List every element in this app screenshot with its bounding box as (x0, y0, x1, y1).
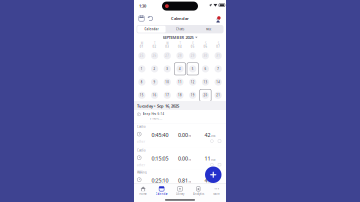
staticText: 25 (140, 54, 144, 57)
staticText: 05 (191, 45, 195, 48)
staticText: 0:45:40 (151, 131, 168, 138)
staticText: vTSS (211, 134, 215, 138)
staticText: 06 (203, 45, 207, 48)
button[interactable]: 13 (199, 75, 212, 89)
button[interactable]: Home (134, 184, 152, 197)
button[interactable]: 29 (186, 49, 199, 62)
staticText: 03 (165, 45, 169, 48)
button[interactable]: 17 (161, 89, 174, 102)
button[interactable]: 8 (135, 75, 148, 89)
button[interactable]: 27 (161, 49, 174, 62)
staticText: 16 (153, 93, 157, 97)
staticText: other (137, 140, 145, 143)
staticText: mi (188, 134, 191, 138)
staticText: S (205, 42, 206, 45)
button[interactable]: 26 (148, 49, 161, 62)
staticText: 04 (178, 45, 182, 48)
staticText: More (213, 192, 220, 196)
staticText: 11 (178, 80, 182, 84)
button[interactable]: SEPTEMBER 2025 (134, 34, 226, 41)
staticText: 4 (179, 67, 181, 71)
button[interactable]: Library (171, 184, 189, 197)
button[interactable]: 30 (199, 49, 212, 62)
staticText: 1 (141, 67, 143, 71)
staticText: 9 (154, 80, 156, 84)
button[interactable]: Charts (166, 26, 194, 33)
staticText: 19 (191, 93, 195, 97)
staticText: M (141, 42, 143, 45)
staticText: 30 (203, 54, 207, 57)
staticText: 8 more... (149, 117, 162, 120)
staticText: 1:30 (139, 3, 146, 8)
staticText: other (137, 163, 145, 167)
staticText: Sleep Hrs: 6:14 (143, 112, 165, 116)
button[interactable]: Jump to date (136, 12, 146, 25)
button[interactable]: 9 (148, 75, 161, 89)
staticText: Calendar (171, 16, 189, 21)
button[interactable]: 7 (212, 62, 224, 75)
button[interactable]: Cardio (134, 147, 226, 170)
staticText: 13 (203, 80, 207, 84)
button[interactable]: Calendar (152, 184, 171, 197)
staticText: mi (188, 180, 191, 183)
staticText: Calendar (156, 192, 168, 196)
button[interactable]: 20 (199, 89, 212, 102)
button[interactable]: 12 (186, 75, 199, 89)
button[interactable]: Add workout (205, 166, 221, 183)
button[interactable]: Profile (215, 12, 222, 25)
button[interactable]: 1 (135, 62, 148, 75)
button[interactable]: Analytics (189, 184, 208, 197)
button[interactable]: 18 (174, 89, 186, 102)
staticText: 27 (165, 54, 169, 57)
staticText: 18 (178, 93, 182, 97)
staticText: Tuesday • Sep 16, 2025 (137, 103, 179, 109)
button[interactable]: 6 (199, 62, 212, 75)
button[interactable]: Refresh (145, 12, 155, 25)
button[interactable]: Cardio (134, 123, 226, 146)
button[interactable]: More (208, 184, 226, 197)
staticText: Analytics (193, 192, 204, 196)
staticText: vTSS (211, 158, 215, 161)
button[interactable]: 2 (148, 62, 161, 75)
staticText: mi (188, 158, 191, 161)
staticText: Calendar (144, 27, 158, 31)
staticText: 20 (203, 93, 207, 97)
staticText: 5 (192, 67, 194, 71)
staticText: 07 (216, 45, 220, 48)
button[interactable]: 5 (186, 62, 199, 75)
button[interactable]: 31 (212, 49, 224, 62)
staticText: Library (176, 192, 184, 196)
staticText: 4 (204, 177, 207, 184)
button[interactable]: 15 (135, 89, 148, 102)
staticText: W (166, 42, 168, 45)
staticText: S (218, 42, 219, 45)
button[interactable]: Misc (194, 26, 223, 33)
staticText: 28 (178, 54, 182, 57)
staticText: 0:25:10 (151, 177, 168, 184)
staticText: 0.81 (178, 177, 188, 184)
button[interactable]: 3 (161, 62, 174, 75)
button[interactable]: Calendar (137, 26, 166, 33)
button[interactable]: 11 (174, 75, 186, 89)
staticText: 01 (140, 45, 144, 48)
staticText: Home (139, 192, 147, 196)
staticText: 42 (204, 131, 210, 138)
button[interactable]: 28 (174, 49, 186, 62)
button[interactable]: 25 (135, 49, 148, 62)
staticText: Cardio (137, 125, 146, 128)
staticText: Cardio (137, 149, 146, 152)
staticText: 6 (204, 67, 206, 71)
staticText: 0.00 (178, 155, 188, 162)
button[interactable]: Walking (134, 169, 226, 192)
staticText: 10 (165, 80, 169, 84)
staticText: Walking (137, 171, 147, 174)
staticText: 21 (216, 93, 220, 97)
staticText: 12 (191, 80, 195, 84)
button[interactable]: 21 (212, 89, 224, 102)
button[interactable]: 10 (161, 75, 174, 89)
button[interactable]: 16 (148, 89, 161, 102)
button[interactable]: 14 (212, 75, 224, 89)
button[interactable]: 19 (186, 89, 199, 102)
button[interactable]: 4 (174, 62, 186, 75)
